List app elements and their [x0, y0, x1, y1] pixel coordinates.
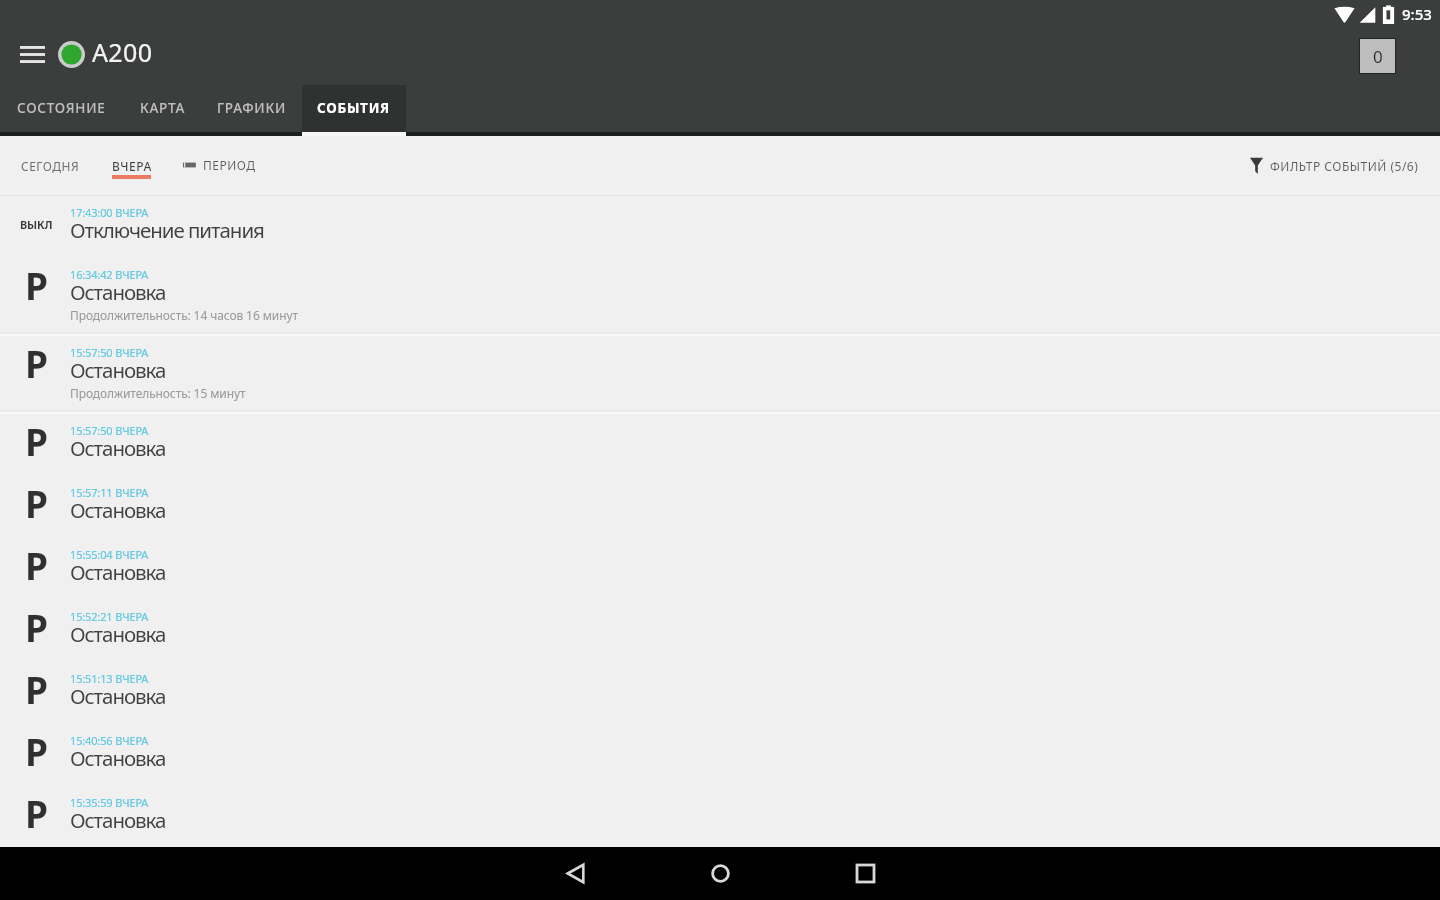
button[interactable]: ВЫКЛ: [0, 196, 1440, 258]
button[interactable]: P: [0, 600, 1440, 662]
staticText: P: [25, 540, 48, 584]
button[interactable]: Back: [503, 847, 648, 900]
button[interactable]: P: [0, 786, 1440, 847]
button[interactable]: КАРТА: [122, 85, 202, 132]
button[interactable]: P: [0, 336, 1440, 410]
staticText: Остановка: [70, 806, 166, 834]
staticText: Остановка: [70, 682, 166, 710]
staticText: 15:57:50 ВЧЕРА: [70, 345, 149, 360]
staticText: 15:40:56 ВЧЕРА: [70, 733, 149, 748]
button[interactable]: P: [0, 662, 1440, 724]
staticText: Остановка: [70, 278, 166, 306]
staticText: Остановка: [70, 356, 166, 384]
staticText: СОСТОЯНИЕ: [17, 99, 106, 117]
button[interactable]: P: [0, 538, 1440, 600]
button[interactable]: СОСТОЯНИЕ: [0, 85, 122, 132]
staticText: P: [25, 338, 48, 382]
button[interactable]: Notifications count: [1359, 38, 1396, 74]
staticText: P: [25, 664, 48, 708]
button[interactable]: P: [0, 476, 1440, 538]
button[interactable]: ФИЛЬТР СОБЫТИЙ (5/6): [1242, 149, 1427, 182]
button[interactable]: Home: [648, 847, 793, 900]
staticText: 15:51:13 ВЧЕРА: [70, 671, 149, 686]
staticText: 15:55:04 ВЧЕРА: [70, 547, 149, 562]
staticText: Остановка: [70, 620, 166, 648]
staticText: A200: [92, 35, 153, 69]
staticText: 16:34:42 ВЧЕРА: [70, 267, 149, 282]
button[interactable]: ПЕРИОД: [179, 151, 260, 179]
button[interactable]: P: [0, 258, 1440, 332]
staticText: 15:35:59 ВЧЕРА: [70, 795, 149, 810]
staticText: Отключение питания: [70, 216, 264, 244]
staticText: Остановка: [70, 434, 166, 462]
button[interactable]: Open navigation menu: [0, 28, 60, 84]
staticText: КАРТА: [140, 99, 185, 117]
staticText: P: [25, 416, 48, 460]
staticText: СЕГОДНЯ: [21, 158, 80, 174]
staticText: 0: [1373, 45, 1383, 68]
button[interactable]: ВЧЕРА: [112, 146, 151, 184]
staticText: 17:43:00 ВЧЕРА: [70, 205, 149, 220]
button[interactable]: СОБЫТИЯ: [302, 85, 406, 132]
staticText: ВЧЕРА: [112, 158, 151, 174]
staticText: P: [25, 602, 48, 646]
staticText: ПЕРИОД: [203, 157, 256, 173]
staticText: 15:52:21 ВЧЕРА: [70, 609, 149, 624]
staticText: Продолжительность: 14 часов 16 минут: [70, 307, 298, 323]
staticText: P: [25, 478, 48, 522]
staticText: Продолжительность: 15 минут: [70, 385, 246, 401]
staticText: 9:53: [1402, 4, 1432, 24]
staticText: P: [25, 788, 48, 832]
staticText: Остановка: [70, 558, 166, 586]
staticText: 15:57:11 ВЧЕРА: [70, 485, 149, 500]
button[interactable]: P: [0, 724, 1440, 786]
staticText: P: [25, 726, 48, 770]
staticText: ФИЛЬТР СОБЫТИЙ (5/6): [1270, 158, 1419, 174]
button[interactable]: Recent apps: [793, 847, 938, 900]
staticText: СОБЫТИЯ: [317, 99, 391, 117]
staticText: P: [25, 260, 48, 304]
button[interactable]: P: [0, 414, 1440, 476]
staticText: 15:57:50 ВЧЕРА: [70, 423, 149, 438]
button[interactable]: СЕГОДНЯ: [14, 146, 86, 184]
staticText: ГРАФИКИ: [217, 99, 287, 117]
staticText: ВЫКЛ: [20, 217, 53, 232]
staticText: Остановка: [70, 496, 166, 524]
button[interactable]: ГРАФИКИ: [202, 85, 302, 132]
staticText: Остановка: [70, 744, 166, 772]
